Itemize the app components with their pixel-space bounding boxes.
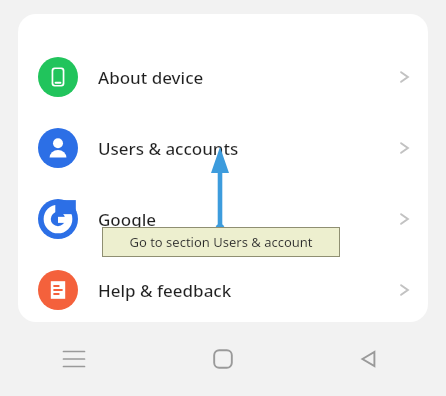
button[interactable]: Help & feedback: [18, 268, 428, 312]
staticText: Google: [98, 208, 157, 231]
button[interactable]: About device: [18, 55, 428, 99]
staticText: Help & feedback: [98, 279, 232, 302]
staticText: Go to section Users & account: [129, 233, 313, 251]
staticText: Users & accounts: [98, 137, 239, 160]
button[interactable]: Back: [297, 322, 446, 396]
staticText: About device: [98, 66, 204, 89]
button[interactable]: Users & accounts: [18, 126, 428, 170]
button[interactable]: Google: [18, 197, 428, 241]
button[interactable]: Recent apps: [0, 322, 148, 396]
button[interactable]: Home: [148, 322, 297, 396]
